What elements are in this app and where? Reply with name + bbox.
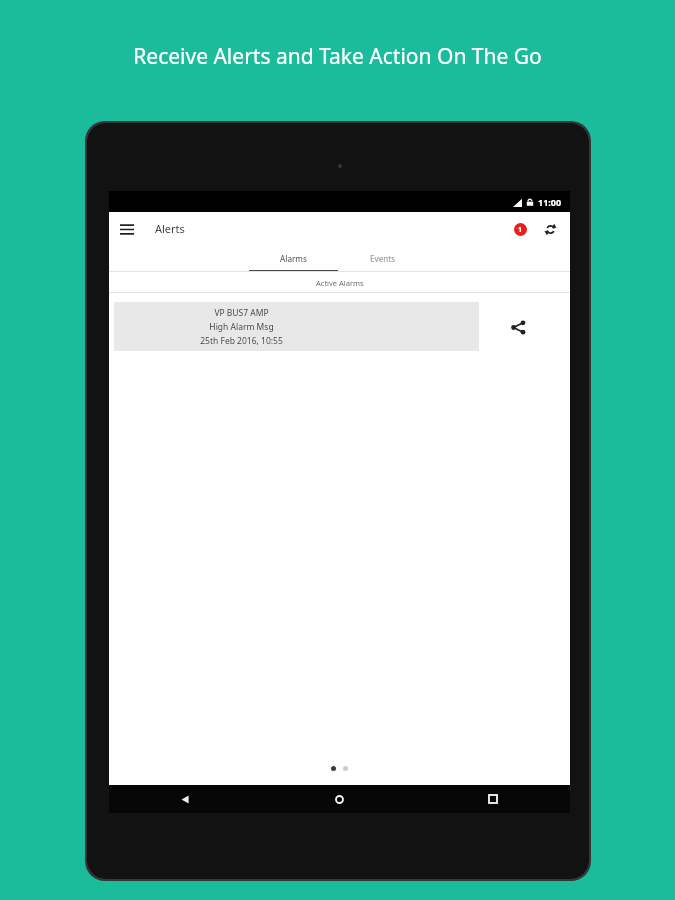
staticText: 1	[518, 225, 523, 235]
staticText: Alerts	[155, 221, 185, 236]
button[interactable]: Page 2	[343, 766, 348, 771]
staticText: Active Alarms	[316, 278, 364, 288]
staticText: 25th Feb 2016, 10:55	[200, 335, 283, 347]
staticText: Alarms	[280, 253, 307, 264]
staticText: VP BUS7 AMP	[214, 307, 269, 319]
button[interactable]: Alarms	[249, 245, 338, 272]
staticText: High Alarm Msg	[209, 321, 274, 333]
button[interactable]: Recent apps	[416, 785, 570, 813]
staticText: Receive Alerts and Take Action On The Go	[0, 42, 675, 71]
button[interactable]: Open navigation menu	[116, 218, 138, 240]
button[interactable]: VP BUS7 AMP	[114, 302, 479, 351]
button[interactable]: 1 unread alert	[514, 223, 527, 236]
button[interactable]: Page 1	[331, 766, 336, 771]
button[interactable]: Refresh	[540, 219, 560, 239]
button[interactable]: Back	[109, 785, 262, 813]
button[interactable]: Events	[338, 245, 427, 272]
staticText: Events	[370, 253, 396, 264]
button[interactable]: Share	[505, 314, 531, 340]
button[interactable]: Home	[262, 785, 416, 813]
staticText: 11:00	[538, 196, 562, 208]
